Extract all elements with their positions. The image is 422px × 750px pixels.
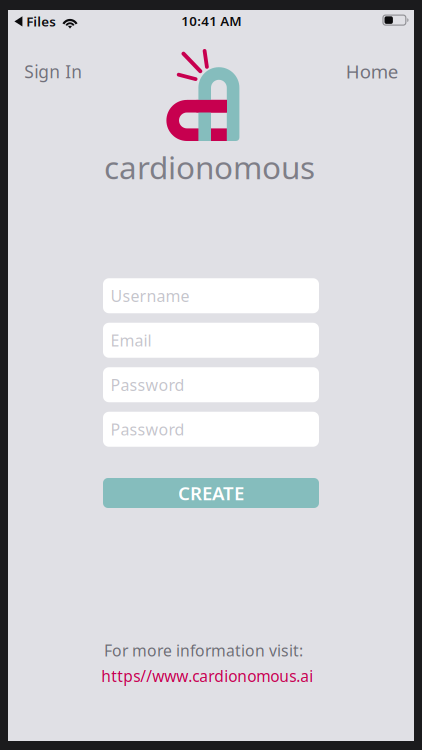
button[interactable]: CREATE: [103, 478, 319, 508]
button[interactable]: Password: [103, 412, 319, 447]
button[interactable]: Email: [103, 323, 319, 358]
staticText: Files: [26, 12, 56, 30]
staticText: Home: [346, 59, 399, 84]
staticText: 10:41 AM: [181, 12, 241, 30]
staticText: Username: [110, 285, 189, 306]
button[interactable]: Username: [103, 278, 319, 313]
staticText: Email: [110, 330, 151, 351]
staticText: For more information visit:: [104, 640, 303, 661]
button[interactable]: Password: [103, 367, 319, 402]
button[interactable]: Back to Files: [14, 12, 56, 30]
staticText: Password: [110, 419, 184, 440]
staticText: CREATE: [178, 481, 244, 505]
staticText: cardionomous: [104, 146, 315, 188]
button[interactable]: Home: [336, 51, 409, 92]
staticText: https//www.cardionomous.ai: [101, 665, 313, 687]
staticText: Password: [110, 374, 184, 395]
staticText: Sign In: [24, 60, 82, 83]
button[interactable]: https//www.cardionomous.ai: [101, 665, 313, 687]
button[interactable]: Sign In: [14, 52, 92, 91]
